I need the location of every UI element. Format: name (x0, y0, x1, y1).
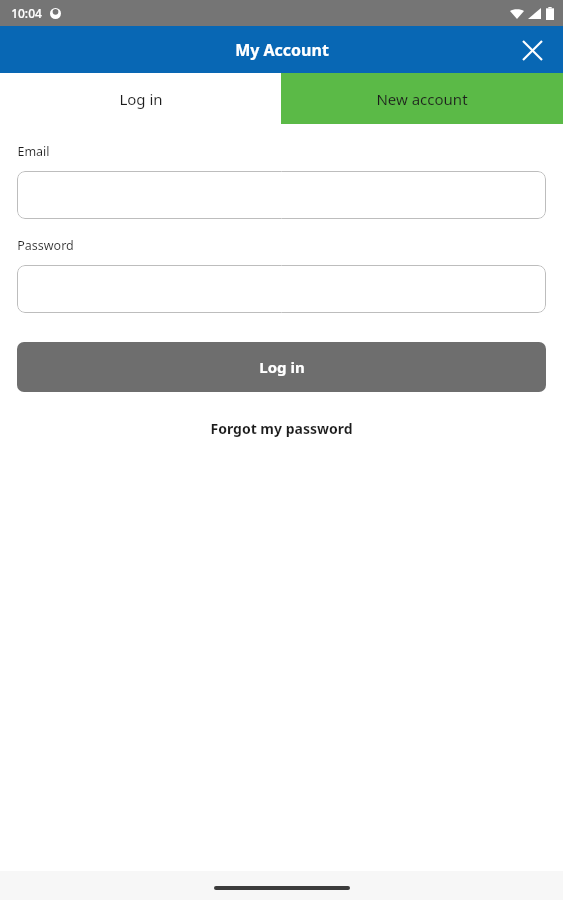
button[interactable]: Log in (0, 73, 281, 124)
staticText: Log in (119, 89, 163, 109)
staticText: 10:04 (11, 5, 42, 21)
button[interactable]: Log in (17, 342, 546, 392)
button[interactable]: Text field (17, 265, 546, 313)
staticText: Forgot my password (210, 419, 353, 438)
button[interactable]: New account (281, 73, 563, 124)
staticText: Email (17, 143, 50, 160)
staticText: My Account (235, 39, 329, 61)
staticText: Log in (259, 357, 305, 377)
button[interactable]: Close (515, 33, 549, 67)
button[interactable]: Text field (17, 171, 546, 219)
staticText: Password (17, 237, 74, 254)
staticText: New account (376, 89, 468, 109)
button[interactable]: Forgot my password (17, 413, 546, 444)
